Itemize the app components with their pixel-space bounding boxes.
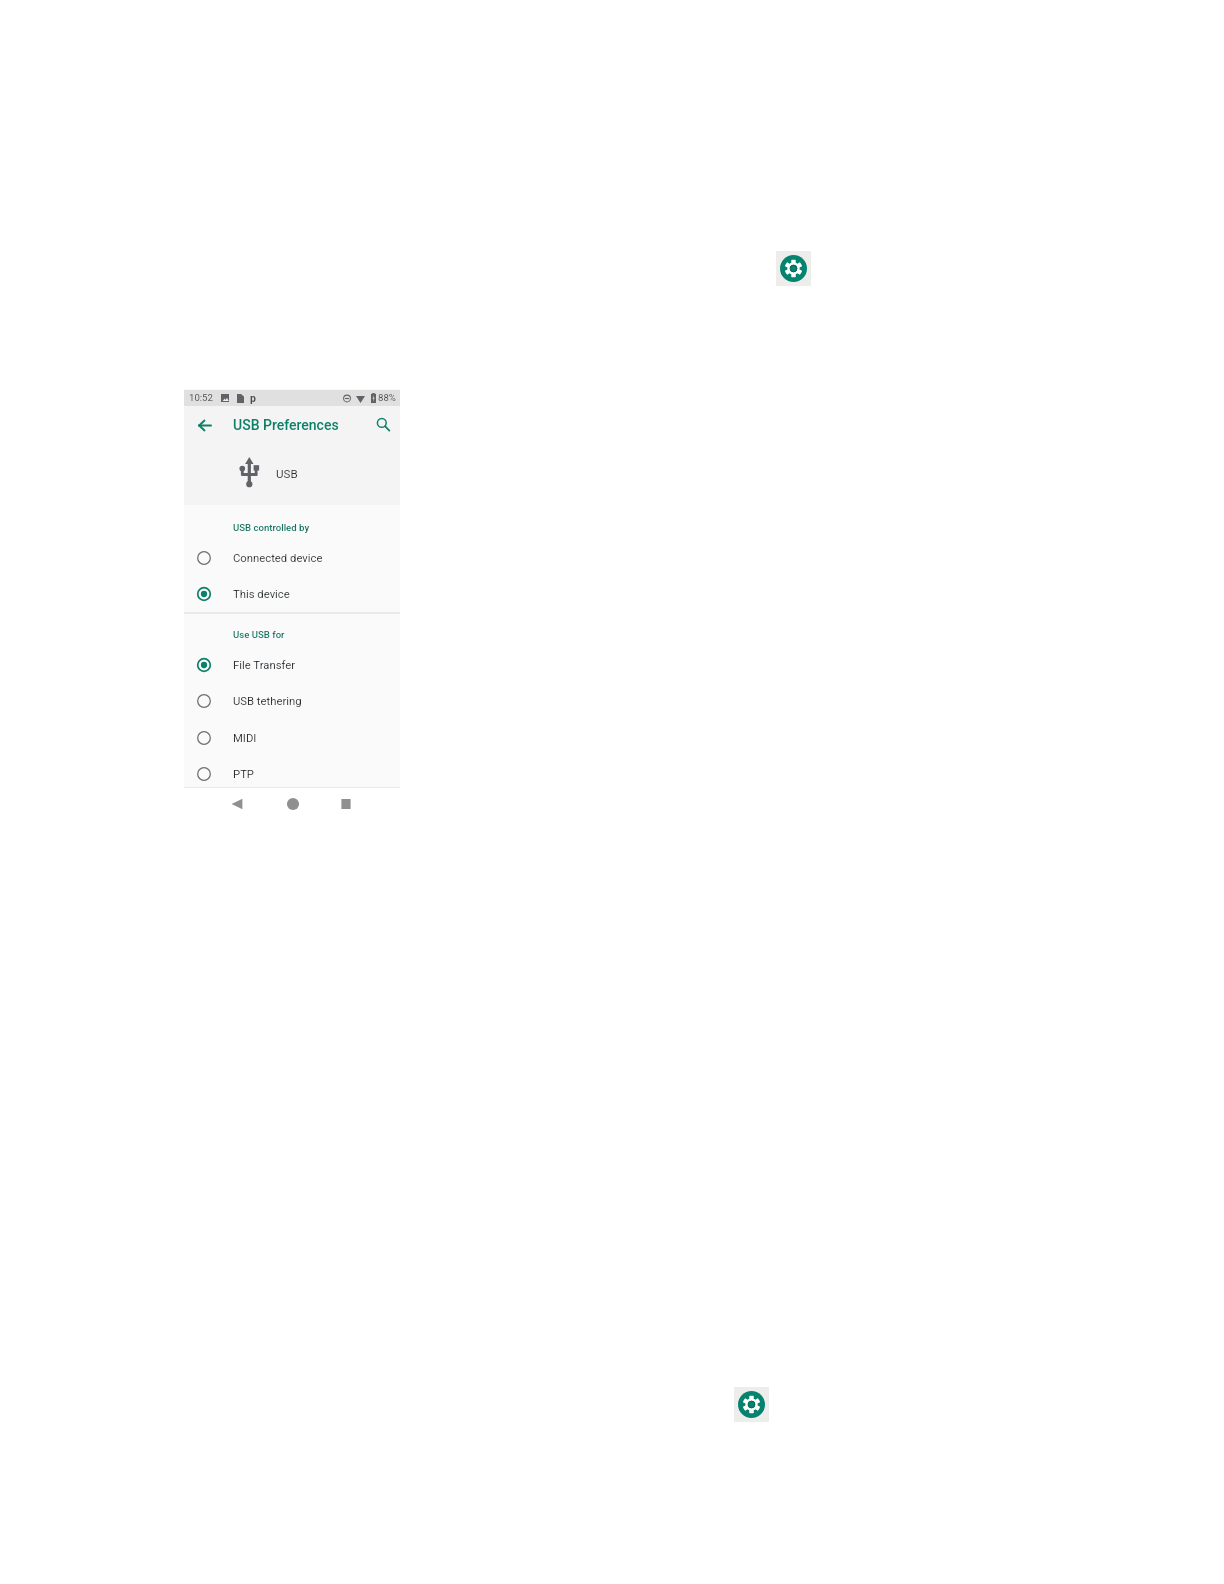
button[interactable]: File Transfer <box>184 647 400 683</box>
staticText: 88% <box>378 392 396 403</box>
button[interactable]: Settings <box>734 1387 769 1422</box>
staticText: PTP <box>233 768 254 781</box>
staticText: 10:52 <box>189 392 213 403</box>
staticText: This device <box>233 588 290 601</box>
button[interactable]: Back <box>226 793 248 815</box>
staticText: USB Preferences <box>233 417 339 433</box>
button[interactable]: USB tethering <box>184 683 400 719</box>
button[interactable]: This device <box>184 576 400 612</box>
staticText: File Transfer <box>233 659 296 672</box>
staticText: Use USB for <box>233 629 285 640</box>
staticText: p <box>250 392 256 404</box>
staticText: Connected device <box>233 552 323 565</box>
button[interactable]: Search <box>372 413 394 435</box>
staticText: USB controlled by <box>233 522 310 533</box>
button[interactable]: PTP <box>184 756 400 792</box>
button[interactable]: Connected device <box>184 540 400 576</box>
staticText: MIDI <box>233 732 257 745</box>
button[interactable]: Settings <box>776 251 811 286</box>
button[interactable]: Back <box>193 414 215 436</box>
staticText: USB <box>276 467 298 481</box>
staticText: USB tethering <box>233 695 302 708</box>
button[interactable]: Recent apps <box>335 793 357 815</box>
button[interactable]: MIDI <box>184 720 400 756</box>
button[interactable]: Home <box>282 793 304 815</box>
